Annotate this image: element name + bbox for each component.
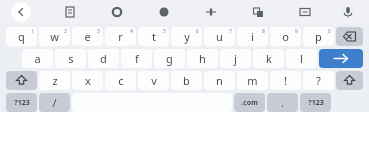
button[interactable]: ?: [303, 71, 334, 90]
staticText: 4: [130, 28, 133, 35]
staticText: n: [216, 73, 223, 88]
staticText: i: [251, 29, 254, 44]
button[interactable]: v: [138, 71, 169, 90]
button[interactable]: .: [267, 93, 298, 112]
staticText: h: [199, 51, 206, 66]
staticText: !: [284, 73, 287, 88]
staticText: k: [266, 51, 272, 66]
button[interactable]: n: [204, 71, 235, 90]
staticText: 9: [295, 28, 298, 35]
button[interactable]: Clipboard: [58, 0, 82, 24]
button[interactable]: Voice input: [336, 0, 360, 24]
button[interactable]: b: [171, 71, 202, 90]
button[interactable]: p: [303, 27, 334, 46]
button[interactable]: d: [88, 49, 119, 68]
staticText: e: [84, 29, 91, 44]
staticText: 2: [64, 28, 67, 35]
button[interactable]: w: [39, 27, 70, 46]
button[interactable]: Theme: [199, 0, 223, 24]
staticText: 8: [262, 28, 265, 35]
staticText: d: [100, 51, 107, 66]
staticText: l: [300, 51, 303, 66]
button[interactable]: ?123: [6, 93, 37, 112]
staticText: g: [166, 51, 173, 66]
staticText: 3: [97, 28, 100, 35]
staticText: 1: [31, 28, 34, 35]
button[interactable]: z: [39, 71, 70, 90]
button[interactable]: s: [55, 49, 86, 68]
button[interactable]: Stickers: [152, 0, 176, 24]
staticText: /: [52, 95, 57, 110]
staticText: u: [216, 29, 223, 44]
button[interactable]: !: [270, 71, 301, 90]
button[interactable]: .com: [234, 93, 265, 112]
staticText: o: [282, 29, 289, 44]
staticText: a: [34, 51, 41, 66]
staticText: s: [68, 51, 74, 66]
staticText: t: [152, 29, 156, 44]
staticText: j: [234, 51, 237, 66]
button[interactable]: Caps lock: [336, 71, 363, 90]
button[interactable]: h: [187, 49, 218, 68]
button[interactable]: GIF: [293, 0, 317, 24]
staticText: v: [151, 73, 157, 88]
button[interactable]: y: [171, 27, 202, 46]
staticText: r: [118, 29, 123, 44]
button[interactable]: /: [39, 93, 70, 112]
button[interactable]: Shift: [6, 71, 37, 90]
button[interactable]: c: [105, 71, 136, 90]
staticText: p: [315, 29, 322, 44]
button[interactable]: Enter: [319, 49, 363, 68]
button[interactable]: f: [121, 49, 152, 68]
staticText: f: [135, 51, 139, 66]
button[interactable]: Settings: [105, 0, 129, 24]
staticText: q: [18, 29, 25, 44]
staticText: w: [50, 29, 59, 44]
staticText: 6: [196, 28, 199, 35]
staticText: c: [118, 73, 124, 88]
button[interactable]: j: [220, 49, 251, 68]
button[interactable]: Backspace: [336, 27, 363, 46]
staticText: 0: [328, 28, 331, 35]
button[interactable]: m: [237, 71, 268, 90]
staticText: .: [281, 95, 284, 110]
staticText: ?123: [14, 98, 30, 108]
staticText: y: [184, 29, 190, 44]
button[interactable]: o: [270, 27, 301, 46]
button[interactable]: ?123: [300, 93, 331, 112]
button[interactable]: a: [22, 49, 53, 68]
staticText: x: [85, 73, 91, 88]
button[interactable]: e: [72, 27, 103, 46]
staticText: .com: [241, 98, 258, 108]
staticText: ?: [316, 73, 321, 88]
button[interactable]: Translate: [246, 0, 270, 24]
staticText: ?123: [308, 98, 324, 108]
button[interactable]: Back: [11, 2, 31, 22]
staticText: 5: [163, 28, 166, 35]
button[interactable]: q: [6, 27, 37, 46]
staticText: 7: [229, 28, 232, 35]
button[interactable]: l: [286, 49, 317, 68]
button[interactable]: x: [72, 71, 103, 90]
button[interactable]: i: [237, 27, 268, 46]
staticText: m: [247, 73, 258, 88]
staticText: b: [183, 73, 190, 88]
staticText: z: [52, 73, 58, 88]
button[interactable]: u: [204, 27, 235, 46]
button[interactable]: k: [253, 49, 284, 68]
button[interactable]: g: [154, 49, 185, 68]
button[interactable]: r: [105, 27, 136, 46]
button[interactable]: t: [138, 27, 169, 46]
